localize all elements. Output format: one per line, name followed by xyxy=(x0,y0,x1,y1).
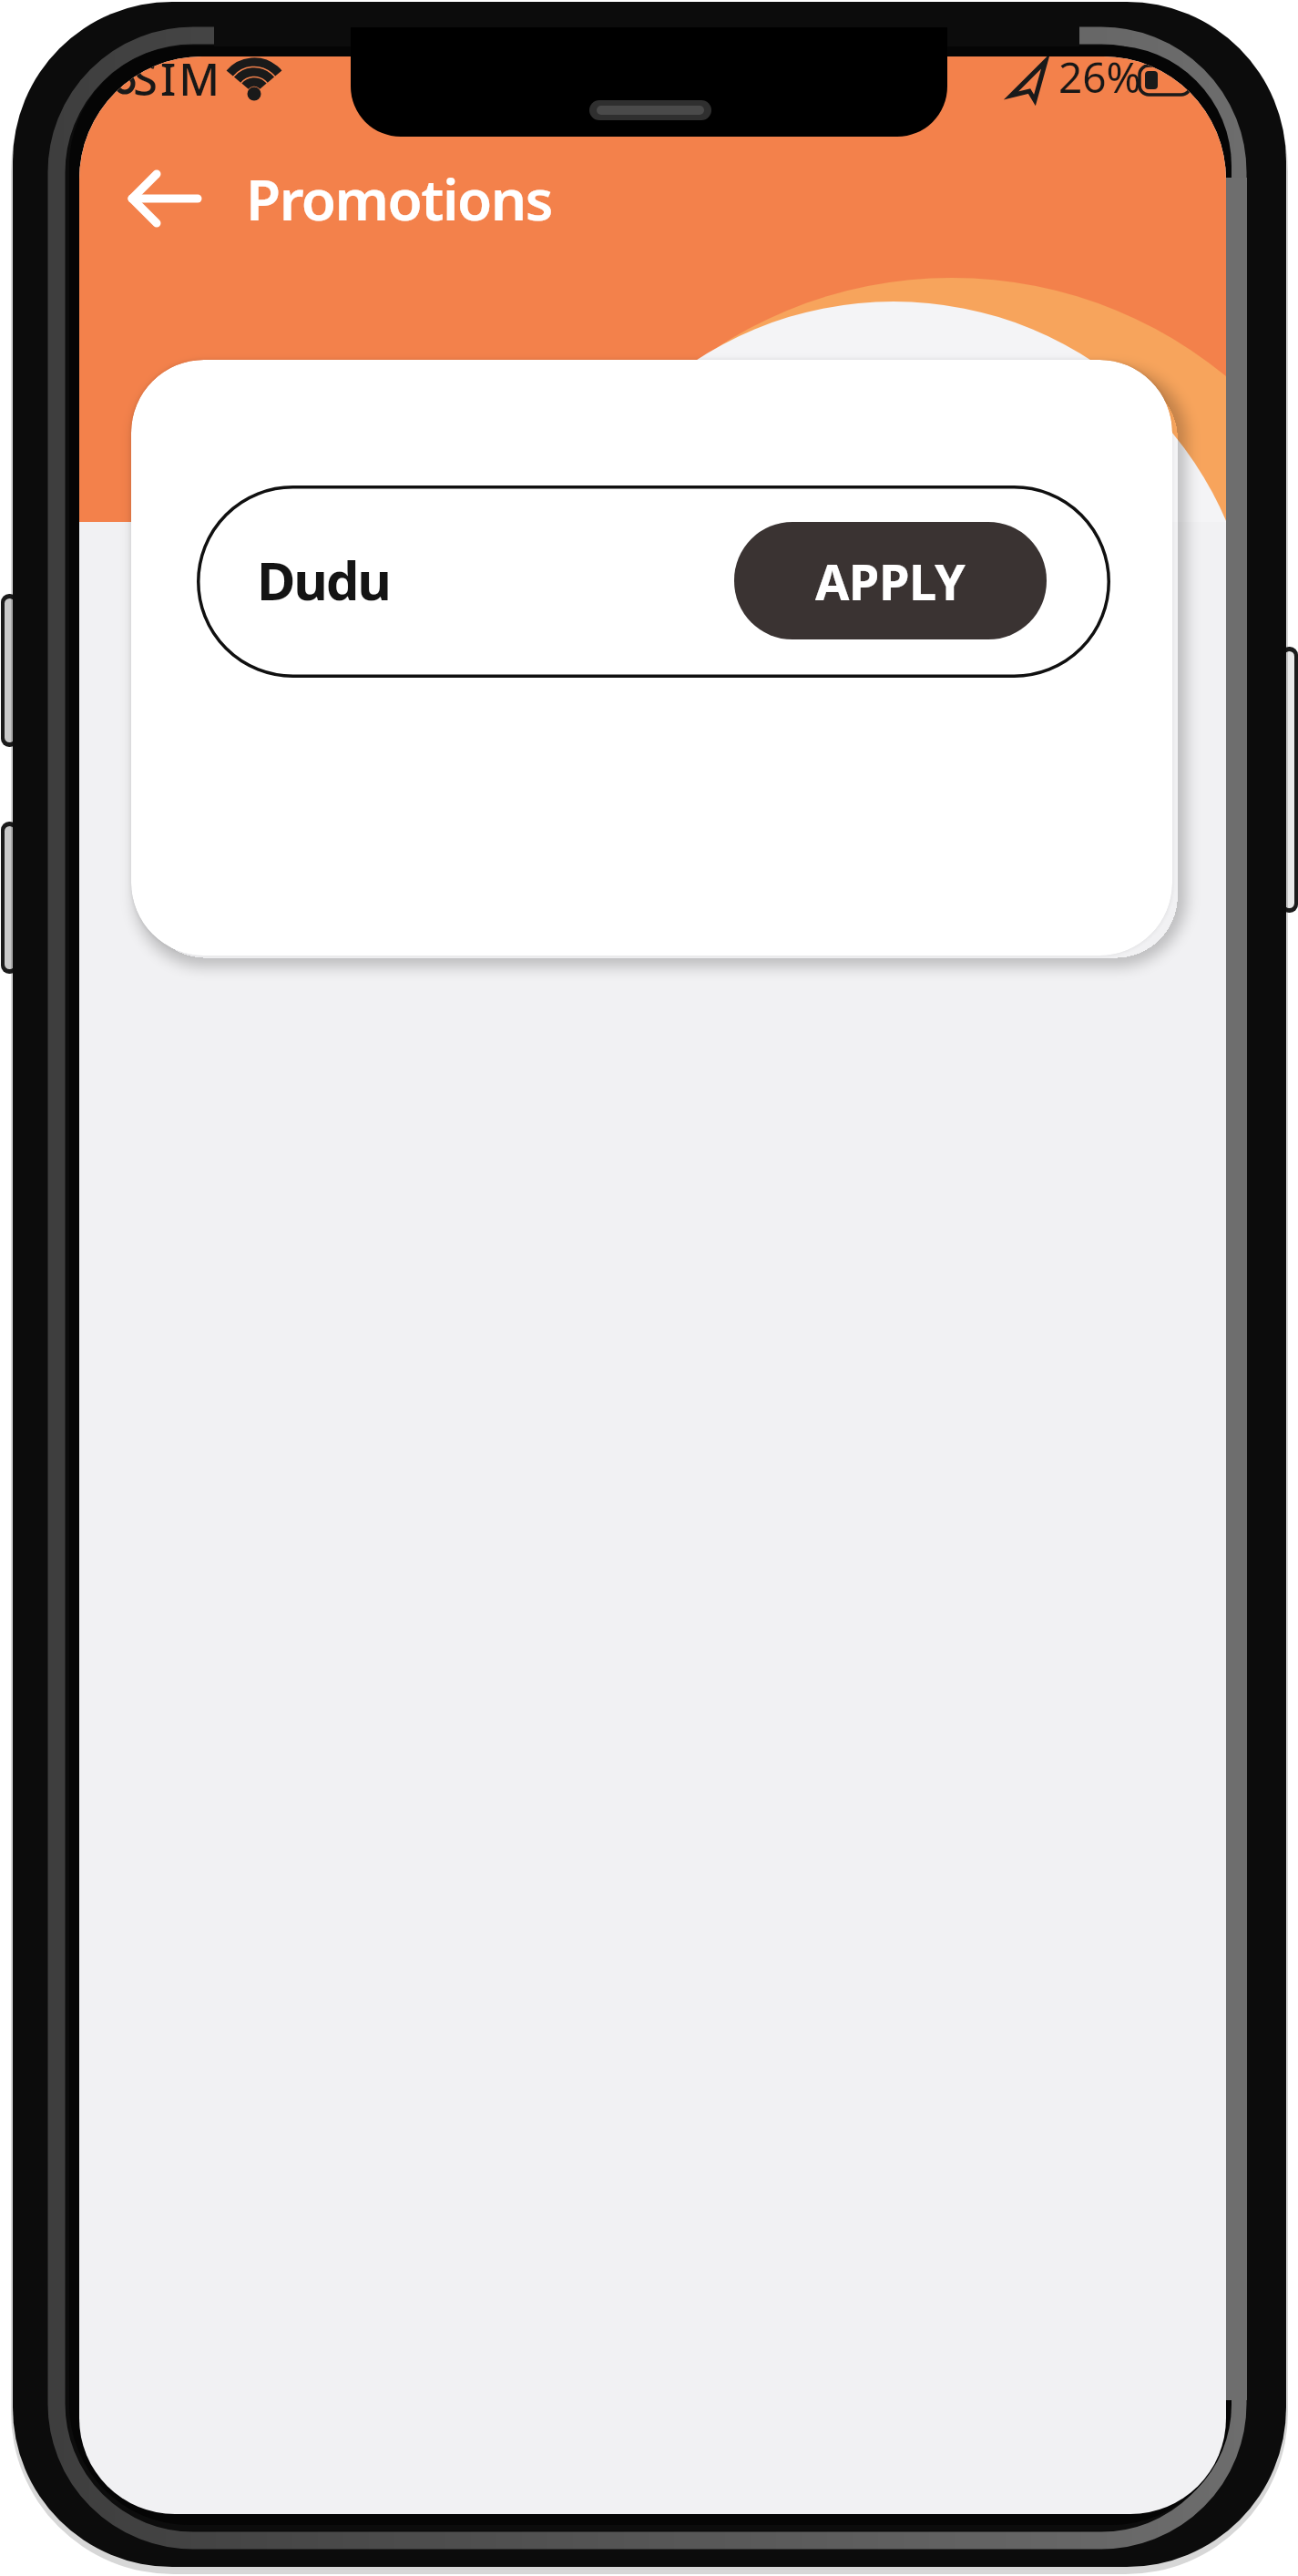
staticText: Dudu xyxy=(257,544,390,616)
staticText: APPLY xyxy=(815,547,966,615)
button[interactable]: APPLY xyxy=(734,522,1047,639)
staticText: SIM xyxy=(133,56,223,109)
button[interactable]: Dudu xyxy=(197,486,1110,678)
button[interactable] xyxy=(119,157,210,233)
staticText: 26% xyxy=(1058,56,1141,106)
staticText: Promotions xyxy=(246,160,552,237)
